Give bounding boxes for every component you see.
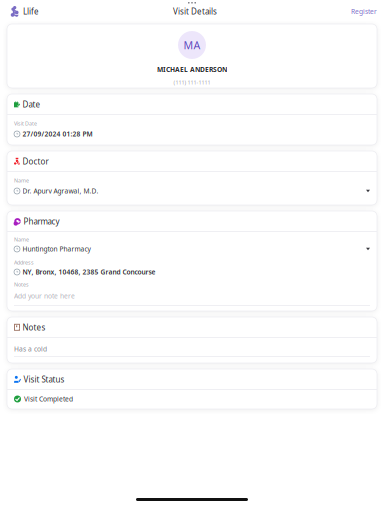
- button[interactable]: Add your note here: [14, 288, 370, 300]
- button[interactable]: Llife: [0, 4, 39, 19]
- staticText: Has a cold: [14, 345, 47, 353]
- button[interactable]: Name: [7, 172, 377, 205]
- staticText: Huntington Pharmacy: [22, 245, 90, 253]
- staticText: Dr. Apurv Agrawal, M.D.: [22, 187, 98, 195]
- staticText: Name: [14, 236, 29, 243]
- staticText: Register: [351, 7, 377, 16]
- staticText: (111) 111-1111: [173, 79, 210, 86]
- staticText: Add your note here: [14, 292, 75, 300]
- staticText: Doctor: [22, 156, 48, 167]
- staticText: NY, Bronx, 10468, 2385 Grand Concourse: [22, 268, 155, 276]
- staticText: MA: [183, 38, 200, 52]
- staticText: Name: [14, 177, 29, 184]
- staticText: Visit Details: [173, 6, 217, 17]
- staticText: Date: [22, 99, 40, 110]
- button[interactable]: Name: [14, 232, 370, 253]
- staticText: Notes: [22, 322, 45, 333]
- button[interactable]: Has a cold: [7, 338, 377, 353]
- staticText: Pharmacy: [23, 216, 59, 227]
- staticText: Visit Status: [23, 374, 64, 385]
- staticText: Llife: [23, 6, 39, 17]
- staticText: Notes: [14, 281, 29, 288]
- staticText: MICHAEL ANDERSON: [157, 65, 227, 74]
- staticText: 27/09/2024 01:28 PM: [22, 130, 92, 138]
- staticText: Visit Completed: [24, 395, 73, 403]
- staticText: Visit Date: [14, 120, 37, 127]
- button[interactable]: Register: [351, 5, 384, 18]
- staticText: Address: [14, 259, 34, 266]
